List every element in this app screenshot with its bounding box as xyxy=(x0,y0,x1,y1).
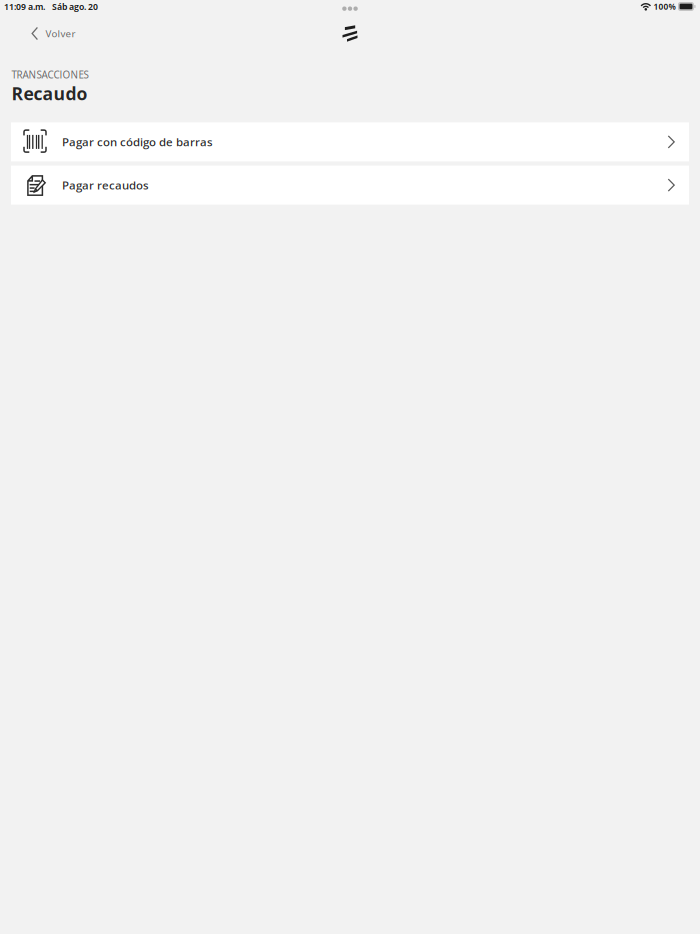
button[interactable]: Pagar recaudos xyxy=(11,166,689,205)
staticText: Pagar con código de barras xyxy=(62,134,213,150)
staticText: Sáb ago. 20 xyxy=(52,1,98,13)
staticText: Pagar recaudos xyxy=(62,177,149,193)
staticText: Volver xyxy=(45,27,75,40)
staticText: TRANSACCIONES xyxy=(12,68,89,81)
staticText: 100% xyxy=(654,1,676,12)
button[interactable]: Volver xyxy=(21,20,85,47)
button[interactable]: Pagar con código de barras xyxy=(11,122,689,161)
staticText: Recaudo xyxy=(12,81,88,105)
staticText: 11:09 a.m. xyxy=(4,1,45,13)
